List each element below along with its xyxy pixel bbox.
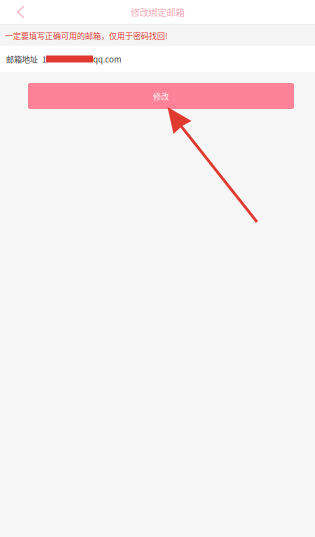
staticText: 1 [42,53,46,65]
button[interactable]: Back [0,0,33,24]
button[interactable]: 邮箱地址 [0,46,315,72]
staticText: 邮箱地址 [6,53,38,65]
staticText: 修改 [153,90,169,102]
staticText: 一定要填写正确可用的邮箱，仅用于密码找回! [5,30,168,41]
staticText: qq.com [93,53,121,65]
staticText: 修改绑定邮箱 [130,5,184,19]
button[interactable]: 修改 [28,83,294,109]
